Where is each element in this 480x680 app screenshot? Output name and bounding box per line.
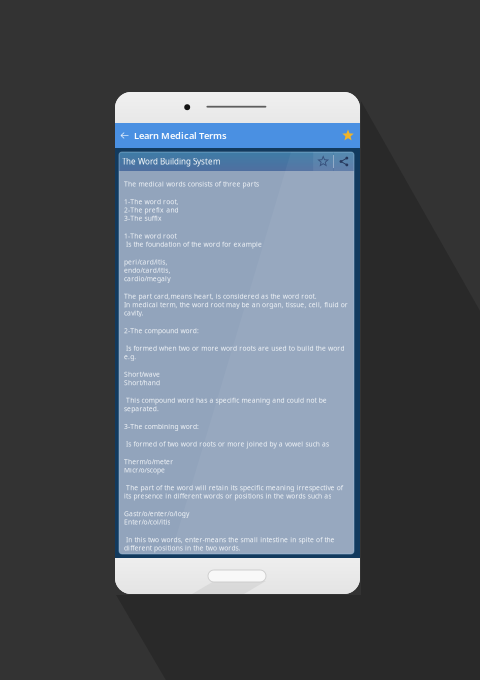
staticText: Learn Medical Terms	[134, 129, 227, 142]
staticText: Short/hand	[124, 378, 160, 387]
staticText: In this two words, enter-means the small…	[124, 535, 335, 544]
staticText: 3-The combining word:	[124, 422, 199, 431]
staticText: 2-The compound word:	[124, 326, 199, 335]
staticText: 2-The prefix and	[124, 205, 178, 214]
staticText: Short/wave	[124, 370, 160, 379]
staticText: e.g.	[124, 352, 136, 361]
staticText: In medical term, the word root may be an…	[124, 300, 348, 309]
staticText: cardio/megaly	[124, 274, 170, 283]
button[interactable]: Add to favourites	[336, 123, 360, 148]
staticText: The Word Building System	[122, 156, 220, 167]
staticText: endo/card/itis,	[124, 266, 170, 275]
staticText: cavity.	[124, 308, 144, 317]
staticText: Is formed when two or more word roots ar…	[124, 344, 344, 353]
staticText: 1-The word root,	[124, 197, 178, 206]
staticText: Therm/o/meter	[124, 457, 173, 466]
staticText: 1-The word root	[124, 231, 176, 240]
staticText: Is the foundation of the word for exampl…	[124, 240, 262, 249]
staticText: The medical words consists of three part…	[124, 179, 259, 188]
staticText: 3-The suffix	[124, 214, 162, 223]
staticText: The part of the word will retain its spe…	[124, 483, 343, 492]
staticText: Is formed of two word roots or more join…	[124, 440, 329, 448]
staticText: The part card,means heart, is considered…	[124, 292, 317, 301]
staticText: Gastr/o/enter/o/logy	[124, 509, 189, 518]
staticText: This compound word has a specific meanin…	[124, 396, 327, 405]
button[interactable]: Bookmark	[313, 152, 333, 171]
staticText: Micr/o/scope	[124, 466, 165, 474]
staticText: separated.	[124, 404, 159, 413]
staticText: different positions in the two words.	[124, 544, 241, 552]
button[interactable]: Share	[334, 152, 354, 171]
staticText: Enter/o/col/itis	[124, 518, 170, 526]
staticText: its presence in different words or posit…	[124, 492, 331, 500]
staticText: peri/card/itis,	[124, 257, 167, 266]
button[interactable]: Back	[115, 123, 134, 148]
